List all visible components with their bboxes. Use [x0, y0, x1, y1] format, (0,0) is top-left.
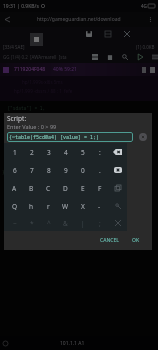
- staticText: 2: [30, 148, 34, 157]
- button[interactable]: X: [74, 197, 91, 215]
- staticText: {~table(f5cd0a4) [value] = 1;): [9, 134, 100, 141]
- staticText: 9: [64, 166, 68, 175]
- button[interactable]: 2: [23, 143, 40, 161]
- button[interactable]: Stop: [30, 33, 43, 46]
- staticText: CANCEL: [100, 237, 119, 244]
- staticText: A: [12, 184, 17, 193]
- staticText: ["address"] = 1,: [2, 153, 51, 159]
- button[interactable]: 7: [23, 161, 40, 179]
- button[interactable]: W: [57, 197, 74, 215]
- staticText: :: [99, 148, 101, 157]
- staticText: ["freeze"] = 1,: [2, 145, 48, 151]
- staticText: OK: [132, 237, 140, 244]
- button[interactable]: 3: [40, 143, 57, 161]
- button[interactable]: *: [23, 215, 40, 231]
- staticText: |: [81, 219, 85, 228]
- staticText: X: [81, 202, 85, 211]
- button[interactable]: A: [6, 179, 23, 197]
- staticText: Enter Value : 0 > 99: [7, 123, 57, 130]
- staticText: E: [81, 184, 85, 193]
- staticText: ^: [47, 219, 51, 228]
- button[interactable]: 9: [57, 161, 74, 179]
- staticText: GG (1/4) 0.2 [AWArrearell [sta: [3, 54, 67, 60]
- staticText: W: [62, 202, 69, 211]
- staticText: 8: [47, 166, 51, 175]
- button[interactable]: 4: [57, 143, 74, 161]
- staticText: 7119204F048: [14, 66, 46, 73]
- button[interactable]: Backspace: [108, 143, 127, 161]
- button[interactable]: h: [23, 197, 40, 215]
- button[interactable]: {~table(f5cd0a4) [value] = 1;): [7, 132, 133, 142]
- staticText: ;: [99, 219, 101, 228]
- button[interactable]: Play: [135, 52, 144, 61]
- button[interactable]: E: [74, 179, 91, 197]
- button[interactable]: 0: [74, 161, 91, 179]
- staticText: r: [47, 202, 50, 211]
- staticText: ["value"] = 1,: [2, 129, 46, 135]
- button[interactable]: 7119204F048: [0, 63, 158, 76]
- button[interactable]: B: [23, 179, 40, 197]
- staticText: ~: [13, 219, 17, 228]
- button[interactable]: .: [91, 161, 108, 179]
- staticText: -: [98, 202, 101, 211]
- button[interactable]: 5: [74, 143, 91, 161]
- button[interactable]: Grid: [103, 29, 112, 38]
- button[interactable]: Search: [120, 52, 129, 61]
- staticText: (1) 0.0KB: [136, 44, 155, 50]
- staticText: ["_type"] = 1,: [2, 121, 46, 127]
- staticText: [33/4 SAE]: [3, 44, 25, 50]
- button[interactable]: CANCEL: [97, 234, 122, 247]
- staticText: 5: [81, 148, 85, 157]
- staticText: ["flags"] = 4,: [2, 137, 46, 143]
- staticText: &: [63, 219, 68, 228]
- button[interactable]: Delete: [105, 52, 114, 61]
- button[interactable]: Clear: [108, 161, 127, 179]
- button[interactable]: &: [57, 215, 74, 231]
- staticText: hp/1.999 -dssrs / 88 : 1 fefe: [14, 88, 73, 94]
- staticText: Script:: [7, 114, 27, 123]
- button[interactable]: Save: [84, 29, 93, 38]
- button[interactable]: More: [150, 52, 158, 61]
- button[interactable]: Copy: [108, 179, 127, 197]
- staticText: ['name'] = a,: [2, 161, 43, 167]
- button[interactable]: Close: [108, 215, 127, 231]
- staticText: }: [2, 169, 5, 175]
- staticText: 0: [81, 166, 85, 175]
- button[interactable]: r: [40, 197, 57, 215]
- button[interactable]: 1: [6, 143, 23, 161]
- staticText: ["sdata"] = 1,: [2, 105, 46, 111]
- button[interactable]: Clear text: [139, 133, 147, 141]
- button[interactable]: Close: [122, 29, 131, 38]
- staticText: 40% 59:21: [53, 66, 77, 73]
- staticText: 101.1.1 A1: [60, 340, 85, 347]
- staticText: 1: [13, 148, 17, 157]
- button[interactable]: C: [40, 179, 57, 197]
- staticText: .: [99, 166, 101, 175]
- button[interactable]: List: [90, 52, 99, 61]
- staticText: 3: [47, 148, 51, 157]
- button[interactable]: Back: [3, 15, 12, 24]
- button[interactable]: Q: [6, 197, 23, 215]
- staticText: D: [63, 184, 68, 193]
- button[interactable]: :: [91, 143, 108, 161]
- button[interactable]: D: [57, 179, 74, 197]
- button[interactable]: F: [91, 179, 108, 197]
- button[interactable]: -: [91, 197, 108, 215]
- button[interactable]: OK: [129, 234, 143, 247]
- button[interactable]: 6: [6, 161, 23, 179]
- staticText: ["hits"] = 1.33,: [2, 113, 51, 119]
- staticText: 19:31 | 0.9KB/s: [3, 3, 39, 10]
- staticText: C: [46, 184, 51, 193]
- button[interactable]: 8: [40, 161, 57, 179]
- staticText: 7: [30, 166, 34, 175]
- staticText: h: [29, 202, 34, 211]
- staticText: hp/1.999s-xl6s 5ms: [22, 79, 63, 85]
- button[interactable]: Paste: [108, 197, 127, 215]
- button[interactable]: Menu: [146, 15, 155, 24]
- staticText: 6: [13, 166, 17, 175]
- staticText: http://gameguardian.net/download: [37, 16, 121, 23]
